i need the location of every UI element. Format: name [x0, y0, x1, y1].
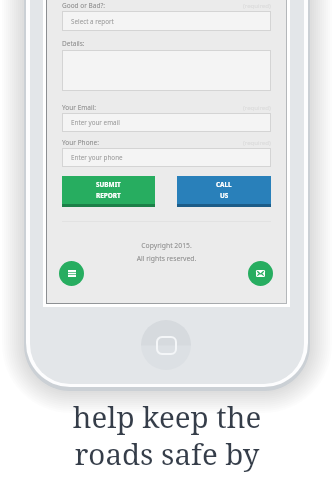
staticText: (required): [243, 104, 271, 112]
staticText: Enter your phone: [71, 153, 123, 162]
button[interactable]: Enter your email: [62, 113, 271, 132]
staticText: SUBMIT: [96, 180, 121, 189]
staticText: REPORT: [96, 191, 121, 200]
staticText: CALL: [216, 180, 232, 189]
button[interactable]: Email: [248, 261, 273, 286]
staticText: roads safe by: [0, 433, 334, 473]
button[interactable]: Menu: [59, 261, 84, 286]
staticText: Details:: [62, 39, 85, 48]
staticText: (required): [243, 139, 271, 147]
button[interactable]: SUBMIT: [62, 176, 155, 204]
staticText: Your Email:: [62, 103, 97, 112]
staticText: (required): [243, 2, 271, 10]
button[interactable]: Home: [141, 320, 191, 370]
staticText: All rights reserved.: [47, 254, 286, 263]
button[interactable]: Enter your phone: [62, 148, 271, 167]
staticText: Enter your email: [71, 118, 120, 127]
staticText: Good or Bad?:: [62, 1, 106, 10]
staticText: Select a report: [71, 17, 114, 26]
staticText: Your Phone:: [62, 138, 99, 147]
staticText: US: [220, 191, 229, 200]
button[interactable]: [62, 50, 271, 91]
button[interactable]: Select a report: [62, 11, 271, 31]
button[interactable]: CALL: [177, 176, 271, 204]
staticText: help keep the: [0, 396, 334, 436]
staticText: Copyright 2015.: [47, 241, 286, 250]
